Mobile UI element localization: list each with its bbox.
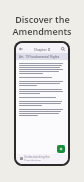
button[interactable]: Add note: [57, 145, 65, 153]
button[interactable]: Understanding the Constitution: [19, 154, 68, 162]
staticText: Understanding the Constitution: [24, 155, 67, 161]
button[interactable]: Back: [18, 46, 24, 52]
staticText: Chapter II: [34, 47, 51, 52]
staticText: Discover the: [15, 13, 70, 25]
staticText: Amendments: [12, 25, 72, 37]
staticText: Art. 19 Fundamental Rights: [19, 55, 60, 59]
button[interactable]: Search: [60, 46, 66, 52]
button[interactable]: Art. 19 Fundamental Rights: [16, 53, 68, 60]
